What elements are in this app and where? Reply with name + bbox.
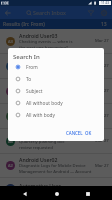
staticText: OK	[85, 130, 92, 136]
staticText: A6	[8, 139, 13, 144]
staticText: Subject	[26, 88, 43, 95]
button[interactable]: Home	[50, 187, 63, 200]
staticText: Quarterly planning doc	[19, 139, 65, 145]
staticText: Test message	[19, 189, 46, 195]
staticText: To	[26, 76, 32, 83]
staticText: Checking events — when is	[19, 39, 73, 45]
staticText: Diagnostic Logs for Mobile	[19, 64, 72, 70]
button[interactable]: A6	[0, 129, 112, 154]
button[interactable]: Settings	[98, 7, 109, 18]
button[interactable]: A2	[0, 154, 112, 178]
staticText: review requested	[19, 145, 53, 151]
staticText: 13	[101, 21, 107, 28]
staticText: Results (In: From)	[3, 21, 45, 28]
button[interactable]: CANCEL	[63, 128, 86, 138]
staticText: A2	[8, 163, 13, 168]
button[interactable]: Subject	[8, 85, 104, 97]
staticText: Search In	[13, 53, 40, 61]
staticText: From	[26, 64, 38, 71]
button[interactable]: A3	[0, 29, 112, 54]
staticText: Mar 27	[95, 63, 109, 69]
staticText: 11:23	[101, 1, 110, 5]
button[interactable]: A5	[0, 79, 112, 104]
staticText: Android User02	[19, 156, 58, 163]
staticText: All with body	[26, 112, 55, 119]
staticText: Mar 27	[95, 113, 109, 119]
staticText: Weekly report summary	[19, 89, 67, 95]
staticText: Mar 27	[95, 163, 109, 169]
button[interactable]: Back	[18, 187, 31, 200]
staticText: All without body	[26, 100, 63, 107]
button[interactable]: Filter	[85, 7, 96, 18]
button[interactable]: To	[8, 73, 104, 85]
staticText: Meeting notes from today	[19, 114, 71, 120]
staticText: Mar 27	[95, 138, 109, 144]
staticText: Mar 27	[95, 88, 109, 94]
button[interactable]: OK	[82, 128, 95, 138]
staticText: Management for Android — Account	[19, 169, 92, 175]
button[interactable]: All without body	[8, 97, 104, 109]
staticText: Android User01	[19, 107, 58, 114]
staticText: Search Inbox	[33, 9, 66, 16]
staticText: Android User03	[19, 32, 58, 39]
button[interactable]: A4	[0, 54, 112, 79]
staticText: the next one happening?	[19, 45, 68, 51]
button[interactable]: From	[8, 61, 104, 73]
staticText: Diagnostic Logs for Mobile Device	[19, 163, 86, 169]
staticText: CANCEL	[66, 130, 83, 136]
staticText: Android User04	[19, 57, 58, 64]
button[interactable]: All with body	[8, 109, 104, 121]
button[interactable]: AU	[0, 178, 112, 200]
staticText: Automotive User	[19, 182, 61, 189]
staticText: A3	[8, 39, 13, 44]
staticText: Mar 27	[95, 38, 109, 44]
button[interactable]: Recent apps	[81, 187, 94, 200]
button[interactable]: Back	[2, 7, 13, 18]
button[interactable]: A1	[0, 104, 112, 129]
